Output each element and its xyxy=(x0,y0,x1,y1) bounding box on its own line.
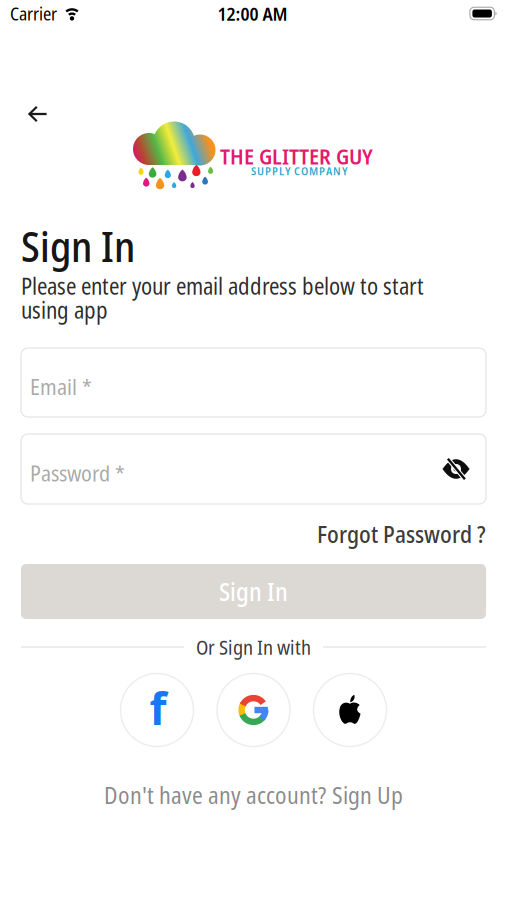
staticText: Sign In xyxy=(21,218,135,274)
button[interactable]: Sign In xyxy=(21,564,486,619)
staticText: 12:00 AM xyxy=(217,1,287,26)
staticText: Email * xyxy=(30,371,92,401)
button[interactable]: Don't have any account? xyxy=(104,779,403,811)
staticText: Or Sign In with xyxy=(196,633,311,661)
staticText: f xyxy=(149,679,166,737)
button[interactable]: Email xyxy=(21,348,486,417)
staticText: Please enter your email address below to… xyxy=(21,274,424,322)
button[interactable]: Forgot Password ? xyxy=(317,518,486,550)
button[interactable]: Sign in with Facebook xyxy=(120,673,193,746)
staticText: Sign In xyxy=(219,575,288,608)
button[interactable]: Sign in with Google xyxy=(217,673,290,746)
staticText: THE GLITTER GUY xyxy=(220,141,373,171)
staticText: S U P P L Y C O M P A N Y xyxy=(251,163,348,179)
staticText: Password * xyxy=(30,458,125,488)
button[interactable]: Password xyxy=(21,434,486,504)
staticText: Carrier xyxy=(10,1,57,26)
button[interactable]: Back xyxy=(18,96,57,132)
staticText: Sign Up xyxy=(332,779,403,811)
button[interactable]: Sign in with Apple xyxy=(313,673,386,746)
staticText: Don't have any account? xyxy=(104,779,326,811)
staticText: Forgot Password ? xyxy=(317,518,486,550)
